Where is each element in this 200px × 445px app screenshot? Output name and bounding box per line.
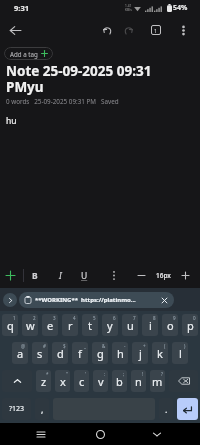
staticText: o [167, 318, 174, 333]
button[interactable]: l [172, 342, 188, 364]
button[interactable]: o [162, 314, 178, 336]
button[interactable]: e [42, 314, 58, 336]
staticText: e [47, 318, 54, 333]
staticText: 8 [153, 315, 156, 321]
staticText: g [97, 346, 104, 361]
button[interactable]: More formatting [102, 263, 126, 288]
button[interactable]: More options [172, 19, 194, 41]
button[interactable]: a [12, 342, 28, 364]
button[interactable]: Back [4, 19, 26, 41]
button[interactable]: Increase font size [175, 263, 196, 288]
staticText: ! [142, 371, 144, 377]
staticText: 0 [193, 315, 196, 321]
button[interactable]: Redo [117, 19, 139, 41]
button[interactable]: Expand toolbar [3, 293, 17, 307]
button[interactable]: j [132, 342, 148, 364]
button[interactable]: Undo [96, 19, 118, 41]
button[interactable]: Hide keyboard [142, 423, 172, 445]
staticText: - [124, 343, 126, 349]
staticText: ( [164, 343, 166, 349]
staticText: **WORKING** https://platinmo... [35, 296, 136, 304]
button[interactable]: Insert [0, 263, 20, 288]
staticText: 3 [53, 315, 56, 321]
button[interactable]: B [24, 263, 46, 288]
button[interactable]: Shift [2, 370, 32, 392]
staticText: l [179, 346, 182, 361]
button[interactable]: r [62, 314, 78, 336]
staticText: b [116, 374, 123, 389]
staticText: + [143, 343, 146, 349]
button[interactable]: h [112, 342, 128, 364]
button[interactable]: q [2, 314, 18, 336]
button[interactable]: ?123 [2, 398, 31, 420]
button[interactable]: Home [85, 423, 115, 445]
button[interactable]: Pages [145, 19, 167, 41]
button[interactable]: I [49, 263, 71, 288]
button[interactable]: , [35, 398, 49, 420]
button[interactable]: p [182, 314, 198, 336]
button[interactable]: f [72, 342, 88, 364]
staticText: _ [84, 343, 86, 349]
button[interactable]: Add a tag [4, 47, 53, 60]
button[interactable]: Enter [177, 398, 198, 420]
staticText: . [165, 403, 168, 415]
staticText: c [79, 374, 85, 389]
button[interactable]: g [92, 342, 108, 364]
staticText: n [135, 374, 142, 389]
staticText: $ [63, 343, 66, 349]
button[interactable]: n [131, 370, 146, 392]
staticText: k [157, 346, 163, 361]
button[interactable]: s [32, 342, 48, 364]
button[interactable]: m [150, 370, 165, 392]
staticText: a [17, 346, 24, 361]
staticText: # [43, 343, 46, 349]
button[interactable]: k [152, 342, 168, 364]
button[interactable]: U [73, 263, 95, 288]
staticText: ? [161, 371, 163, 377]
button[interactable]: i [142, 314, 158, 336]
staticText: ' [85, 371, 87, 377]
staticText: 6 [113, 315, 116, 321]
button[interactable]: z [36, 370, 51, 392]
button[interactable]: Decrease font size [131, 263, 152, 288]
staticText: 1 [154, 27, 158, 34]
button[interactable]: Dismiss suggestion [159, 295, 170, 306]
button[interactable]: **WORKING** https://platinmo... [19, 292, 174, 308]
staticText: t [88, 318, 92, 333]
button[interactable]: Backspace [169, 370, 198, 392]
staticText: , [41, 403, 44, 415]
staticText: 1 [13, 315, 16, 321]
staticText: y [107, 318, 113, 333]
staticText: r [68, 318, 73, 333]
staticText: p [187, 318, 194, 333]
button[interactable]: y [102, 314, 118, 336]
button[interactable]: t [82, 314, 98, 336]
staticText: h [117, 346, 124, 361]
staticText: 1.41 [125, 4, 132, 8]
staticText: U [81, 270, 88, 282]
staticText: 4 [73, 315, 76, 321]
button[interactable]: u [122, 314, 138, 336]
staticText: d [57, 346, 64, 361]
button[interactable]: d [52, 342, 68, 364]
button[interactable]: . [159, 398, 173, 420]
staticText: w [26, 318, 35, 333]
staticText: 5 [93, 315, 96, 321]
button[interactable]: w [22, 314, 38, 336]
staticText: B [32, 270, 38, 282]
staticText: x [60, 374, 66, 389]
staticText: v [98, 374, 104, 389]
button[interactable]: x [55, 370, 70, 392]
staticText: ) [184, 343, 186, 349]
button[interactable]: b [112, 370, 127, 392]
button[interactable]: c [74, 370, 89, 392]
staticText: f [78, 346, 82, 361]
staticText: q [7, 318, 14, 333]
staticText: I [59, 270, 62, 282]
staticText: : [104, 371, 106, 377]
staticText: KB/s [125, 8, 132, 12]
staticText: m [152, 374, 163, 389]
button[interactable]: v [93, 370, 108, 392]
button[interactable]: Recent apps [26, 423, 56, 445]
